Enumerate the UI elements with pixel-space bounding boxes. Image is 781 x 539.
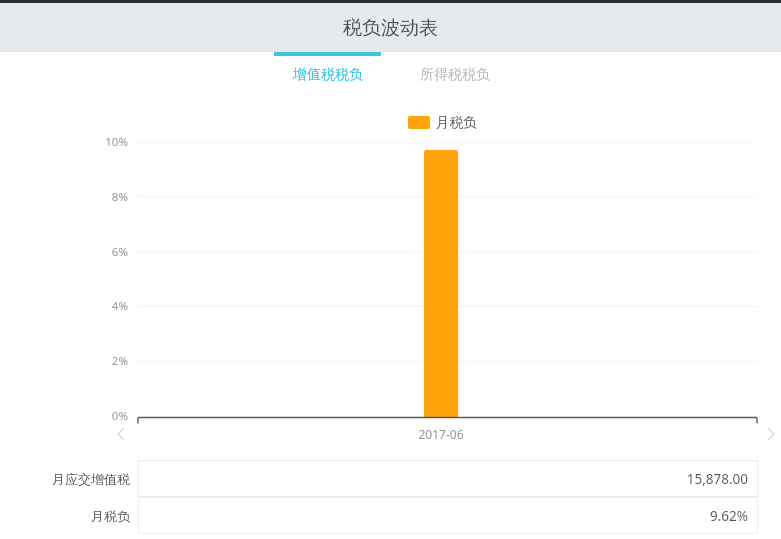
staticText: 0% [86,408,128,424]
staticText: 所得税税负 [420,66,490,84]
staticText: 15,878.00 [686,470,748,488]
staticText: 增值税税负 [293,66,363,84]
staticText: 税负波动表 [343,16,438,40]
button[interactable]: 增值税税负 [274,52,381,96]
button[interactable]: Previous period [109,422,133,446]
staticText: 月应交增值税 [52,471,130,487]
staticText: 月税负 [91,508,130,524]
button[interactable]: 月应交增值税 [0,460,781,497]
staticText: 9.62% [709,507,748,525]
staticText: 2% [86,353,128,369]
staticText: 10% [86,134,128,150]
staticText: 6% [86,244,128,260]
staticText: 8% [86,189,128,205]
staticText: 4% [86,298,128,314]
button[interactable]: 月税负 [0,497,781,534]
button[interactable]: 所得税税负 [401,52,508,96]
staticText: 2017-06 [391,426,491,442]
button[interactable]: 月税负 [408,114,477,131]
button[interactable]: Next period [759,422,781,446]
staticText: 月税负 [436,114,477,131]
